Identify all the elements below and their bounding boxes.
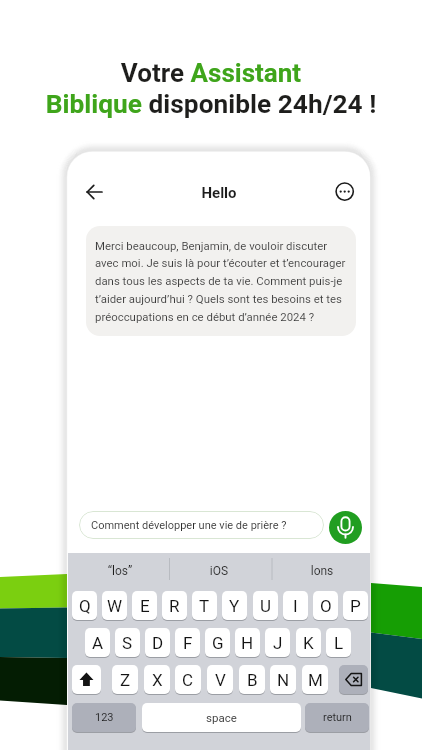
staticText: S (122, 633, 133, 653)
button[interactable] (72, 665, 101, 695)
staticText: M (308, 670, 323, 690)
staticText: Biblique disponible 24h/24 ! (0, 89, 422, 120)
staticText: O (320, 596, 332, 616)
button[interactable]: J (265, 628, 290, 658)
staticText: P (350, 596, 361, 616)
button[interactable]: Y (222, 591, 247, 621)
staticText: “los” (95, 564, 145, 578)
button[interactable]: E (132, 591, 157, 621)
button[interactable] (339, 665, 368, 695)
button[interactable] (329, 511, 362, 544)
staticText: D (152, 633, 164, 653)
button[interactable]: O (313, 591, 338, 621)
button[interactable]: 123 (72, 703, 136, 733)
staticText: H (241, 633, 254, 653)
button[interactable]: Comment développer une vie de prière ? (79, 511, 324, 539)
staticText: Hello (68, 184, 370, 202)
button[interactable]: M (302, 665, 328, 695)
button[interactable]: S (115, 628, 140, 658)
staticText: return (323, 711, 352, 724)
staticText: I (293, 596, 298, 616)
staticText: Y (229, 596, 240, 616)
staticText: space (206, 711, 237, 724)
button[interactable]: N (270, 665, 296, 695)
button[interactable]: P (343, 591, 368, 621)
button[interactable]: T (192, 591, 217, 621)
staticText: R (169, 596, 180, 616)
staticText: E (140, 596, 150, 616)
button[interactable]: I (283, 591, 308, 621)
staticText: W (107, 596, 123, 616)
staticText: K (303, 633, 314, 653)
staticText: iOS (169, 564, 269, 578)
button[interactable]: L (326, 628, 351, 658)
staticText: L (334, 633, 344, 653)
button[interactable] (80, 179, 108, 205)
staticText: X (152, 670, 163, 690)
staticText: Comment développer une vie de prière ? (91, 519, 287, 532)
button[interactable]: Q (72, 591, 97, 621)
button[interactable]: X (144, 665, 170, 695)
button[interactable] (335, 182, 354, 201)
button[interactable]: A (85, 628, 110, 658)
staticText: C (182, 670, 194, 690)
staticText: A (92, 633, 104, 653)
button[interactable]: F (175, 628, 200, 658)
staticText: F (183, 633, 193, 653)
button[interactable]: R (162, 591, 187, 621)
staticText: J (273, 633, 283, 653)
staticText: lons (292, 564, 352, 578)
button[interactable]: space (142, 703, 301, 733)
staticText: V (215, 670, 226, 690)
staticText: N (277, 670, 290, 690)
button[interactable]: D (145, 628, 170, 658)
staticText: Q (79, 596, 91, 616)
staticText: 123 (95, 711, 114, 724)
button[interactable]: K (296, 628, 321, 658)
button[interactable]: B (239, 665, 265, 695)
staticText: Merci beaucoup, Benjamin, de vouloir dis… (95, 239, 346, 324)
staticText: Z (120, 670, 131, 690)
button[interactable]: V (207, 665, 233, 695)
staticText: G (212, 633, 224, 653)
button[interactable]: return (305, 703, 369, 733)
button[interactable]: W (102, 591, 127, 621)
button[interactable]: H (235, 628, 260, 658)
button[interactable]: C (175, 665, 201, 695)
staticText: Votre Assistant (0, 58, 422, 88)
button[interactable]: G (205, 628, 230, 658)
button[interactable]: U (253, 591, 278, 621)
staticText: T (199, 596, 210, 616)
staticText: U (260, 596, 272, 616)
button[interactable]: Z (112, 665, 138, 695)
staticText: B (247, 670, 258, 690)
